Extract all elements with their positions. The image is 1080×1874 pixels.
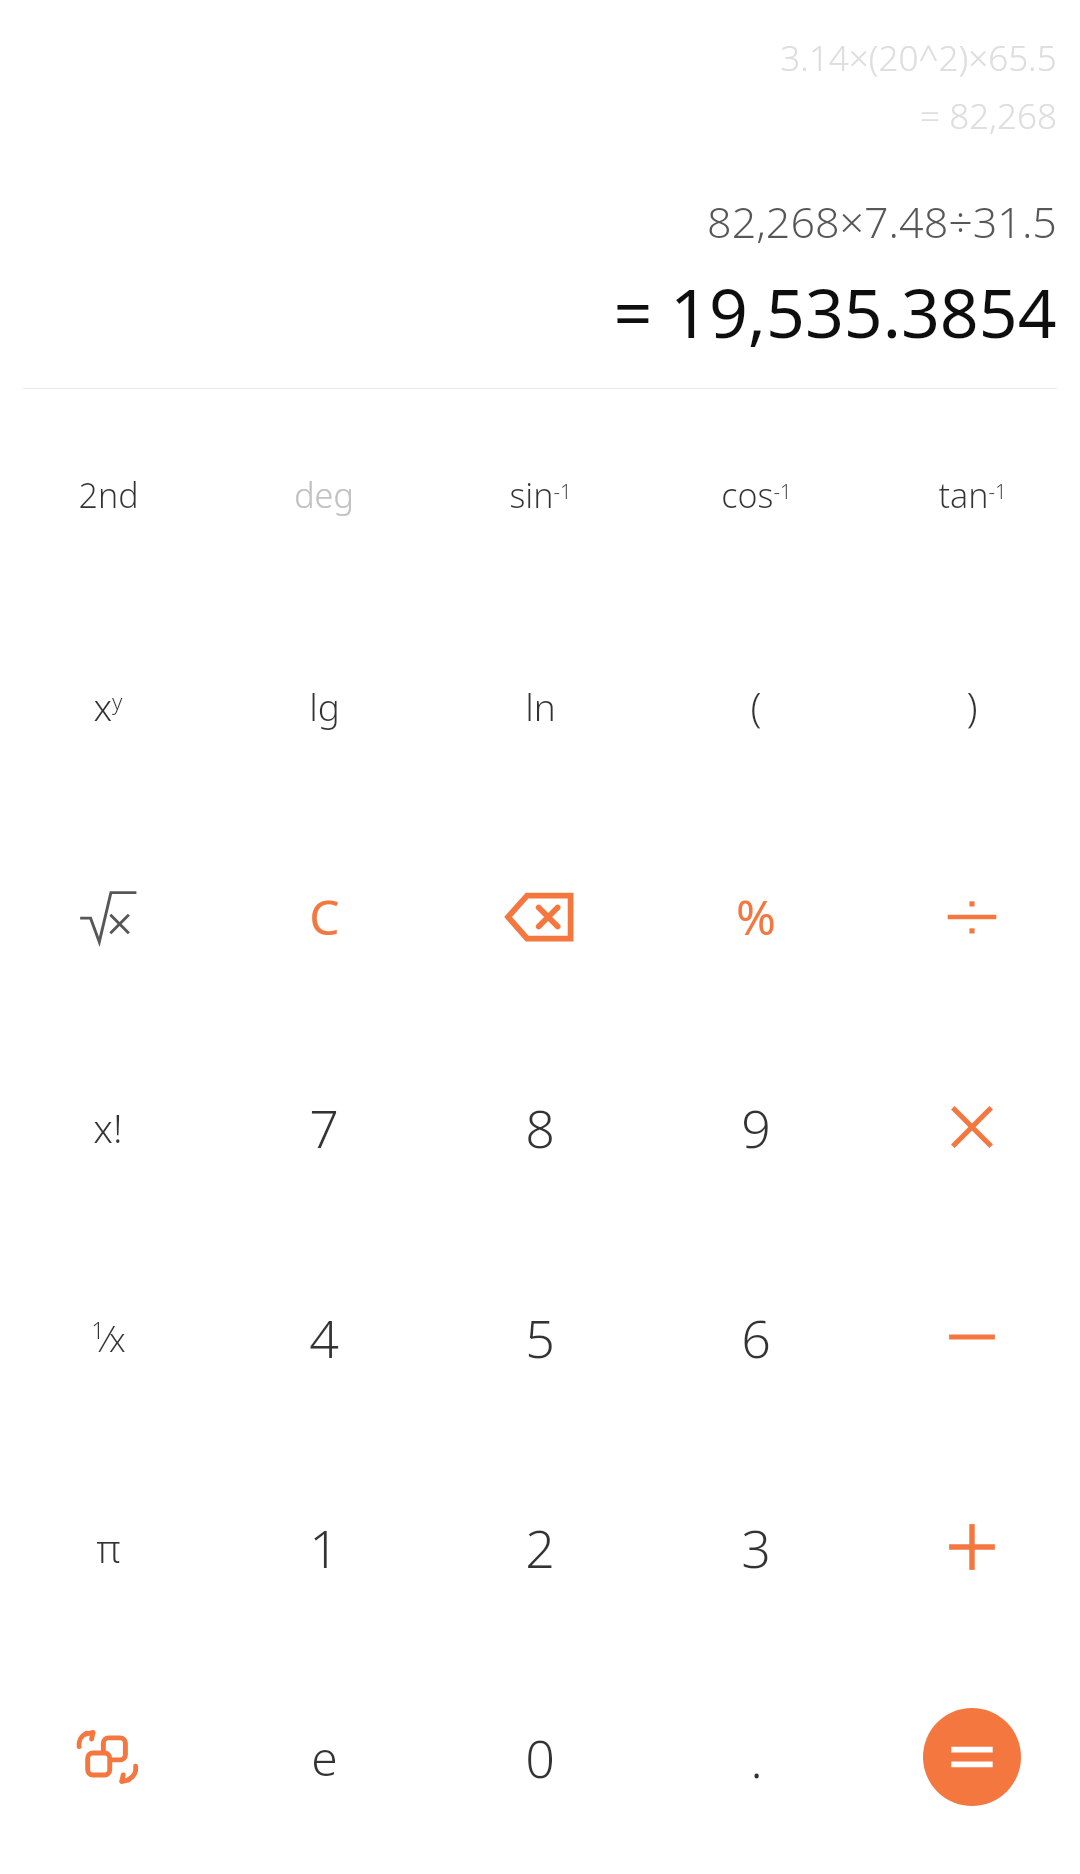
- staticText: 2: [525, 1512, 555, 1583]
- staticText: 7: [309, 1092, 339, 1163]
- staticText: ln: [525, 681, 556, 731]
- staticText: 3.14×(20^2)×65.5: [780, 34, 1057, 82]
- staticText: 3: [741, 1512, 771, 1583]
- staticText: %: [736, 884, 776, 949]
- button[interactable]: deg: [216, 389, 432, 600]
- button[interactable]: (: [648, 600, 864, 811]
- button[interactable]: 2nd: [0, 389, 216, 600]
- staticText: 82,268×7.48÷31.5: [707, 192, 1057, 251]
- staticText: 2nd: [78, 472, 139, 518]
- staticText: C: [309, 884, 340, 949]
- button[interactable]: tan-1: [864, 389, 1080, 600]
- staticText: 8: [525, 1092, 555, 1163]
- button[interactable]: %: [648, 811, 864, 1022]
- staticText: tan-1: [938, 472, 1007, 518]
- button[interactable]: 5: [432, 1232, 648, 1442]
- staticText: 4: [309, 1302, 339, 1373]
- staticText: 0: [525, 1722, 555, 1793]
- button[interactable]: 2: [432, 1442, 648, 1652]
- staticText: (: [750, 679, 762, 733]
- button[interactable]: x!: [0, 1022, 216, 1232]
- button[interactable]: e: [216, 1652, 432, 1862]
- button[interactable]: Square root: [0, 811, 216, 1022]
- button[interactable]: C: [216, 811, 432, 1022]
- button[interactable]: 6: [648, 1232, 864, 1442]
- button[interactable]: Minus: [864, 1232, 1080, 1442]
- staticText: ): [966, 679, 978, 733]
- button[interactable]: xy: [0, 600, 216, 811]
- staticText: = 19,535.3854: [613, 265, 1057, 358]
- button[interactable]: 3: [648, 1442, 864, 1652]
- staticText: = 82,268: [920, 92, 1057, 140]
- button[interactable]: π: [0, 1442, 216, 1652]
- button[interactable]: 4: [216, 1232, 432, 1442]
- button[interactable]: 8: [432, 1022, 648, 1232]
- staticText: x!: [93, 1101, 123, 1154]
- staticText: 5: [525, 1302, 555, 1373]
- staticText: cos-1: [721, 472, 792, 518]
- button[interactable]: ln: [432, 600, 648, 811]
- button[interactable]: cos-1: [648, 389, 864, 600]
- button[interactable]: .: [648, 1652, 864, 1862]
- button[interactable]: Backspace: [432, 811, 648, 1022]
- button[interactable]: 1: [216, 1442, 432, 1652]
- staticText: lg: [309, 681, 340, 731]
- staticText: sin-1: [509, 472, 572, 518]
- button[interactable]: Unit converter: [0, 1652, 216, 1862]
- staticText: e: [311, 1725, 338, 1790]
- button[interactable]: Multiply: [864, 1022, 1080, 1232]
- button[interactable]: 9: [648, 1022, 864, 1232]
- button[interactable]: Divide: [864, 811, 1080, 1022]
- button[interactable]: Equals: [864, 1652, 1080, 1862]
- staticText: 1⁄x: [91, 1312, 126, 1362]
- button[interactable]: ): [864, 600, 1080, 811]
- staticText: 6: [741, 1302, 771, 1373]
- button[interactable]: sin-1: [432, 389, 648, 600]
- staticText: 1: [309, 1512, 339, 1583]
- staticText: 9: [741, 1092, 771, 1163]
- staticText: xy: [93, 681, 123, 731]
- button[interactable]: 7: [216, 1022, 432, 1232]
- staticText: .: [750, 1722, 763, 1793]
- button[interactable]: 1⁄x: [0, 1232, 216, 1442]
- button[interactable]: 0: [432, 1652, 648, 1862]
- button[interactable]: [923, 1708, 1021, 1806]
- button[interactable]: lg: [216, 600, 432, 811]
- button[interactable]: Plus: [864, 1442, 1080, 1652]
- staticText: π: [96, 1521, 121, 1574]
- staticText: deg: [294, 472, 354, 518]
